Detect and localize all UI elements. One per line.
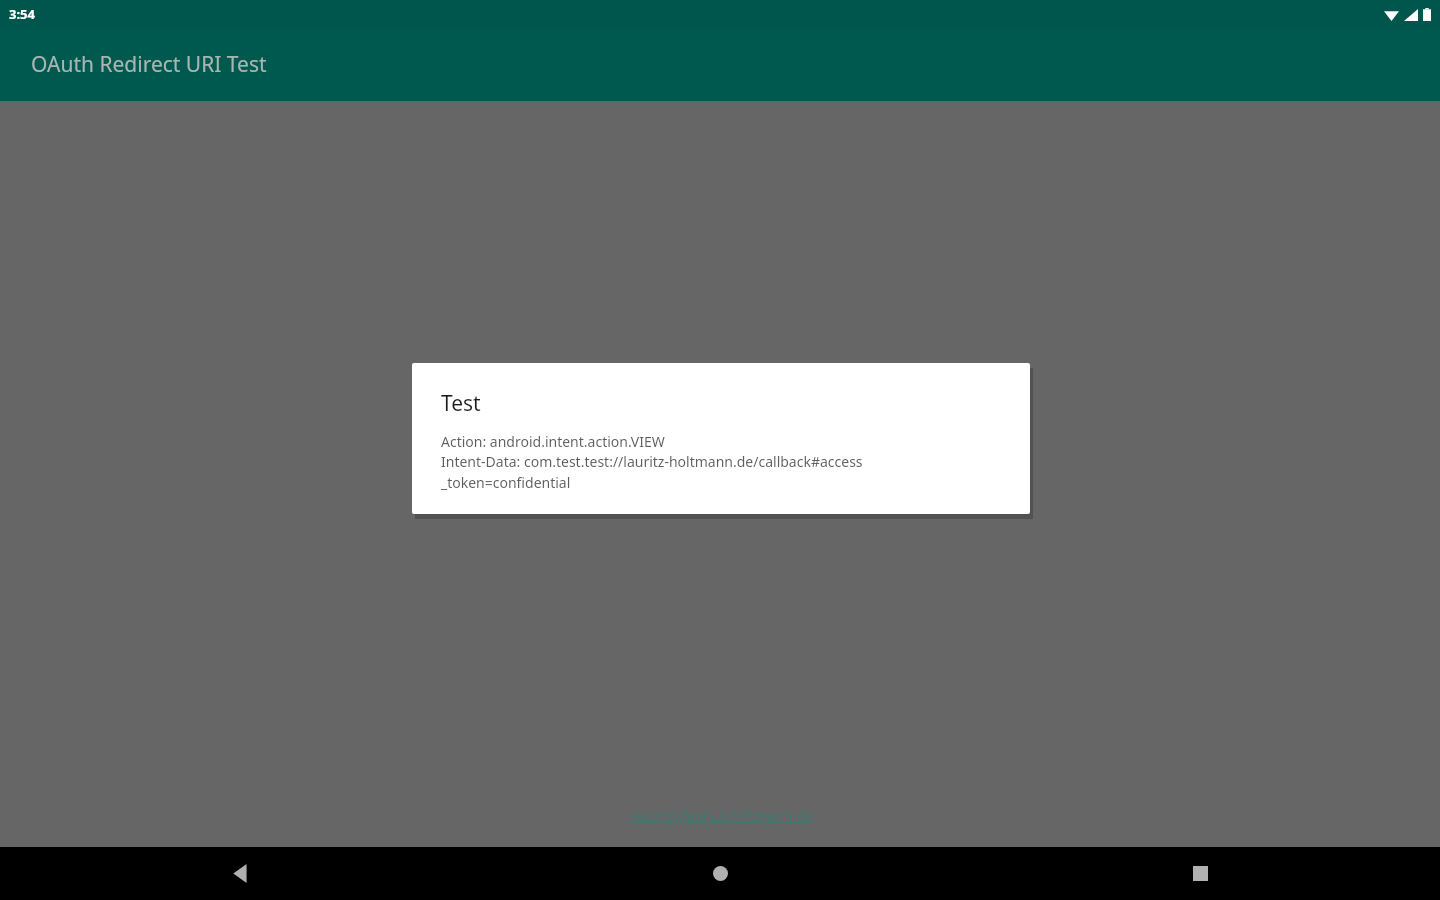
button[interactable]: Recent apps (960, 847, 1440, 900)
staticText: OAuth Redirect URI Test (31, 50, 267, 79)
staticText: 3:54 (9, 5, 35, 23)
button[interactable]: Back (0, 847, 480, 900)
staticText: Test (441, 389, 481, 418)
staticText: This site tries to open an app via a cus… (40, 484, 1400, 502)
staticText: Action: android.intent.action.VIEW Inten… (441, 432, 863, 493)
button[interactable]: Test (412, 363, 1030, 514)
button[interactable]: Home (480, 847, 960, 900)
button[interactable]: security.lauritz-holtmann.de (622, 804, 819, 827)
staticText: security.lauritz-holtmann.de (628, 806, 813, 825)
